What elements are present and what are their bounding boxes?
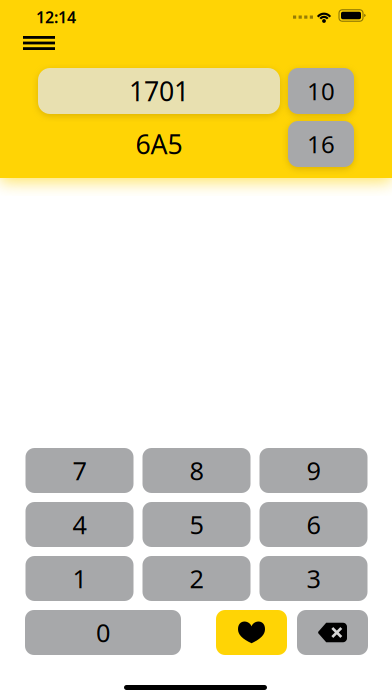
button[interactable]: 4: [25, 502, 133, 547]
button[interactable]: 3: [259, 556, 367, 601]
staticText: 2: [189, 562, 203, 595]
staticText: 8: [189, 454, 203, 487]
staticText: 1701: [129, 73, 189, 109]
button[interactable]: 2: [142, 556, 250, 601]
staticText: 6: [306, 508, 320, 541]
staticText: 10: [307, 75, 335, 107]
staticText: 6A5: [135, 126, 182, 162]
button[interactable]: 16: [288, 121, 354, 167]
button[interactable]: 1: [25, 556, 133, 601]
button[interactable]: Favourite: [216, 610, 287, 655]
button[interactable]: 6A5: [38, 121, 280, 167]
button[interactable]: 5: [142, 502, 250, 547]
button[interactable]: 6: [259, 502, 367, 547]
staticText: 0: [96, 616, 110, 649]
button[interactable]: 7: [25, 448, 133, 493]
staticText: 12:14: [36, 6, 76, 28]
staticText: 1: [72, 562, 86, 595]
staticText: 4: [72, 508, 86, 541]
staticText: 7: [72, 454, 86, 487]
button[interactable]: 1701: [38, 68, 280, 114]
button[interactable]: 8: [142, 448, 250, 493]
button[interactable]: 9: [259, 448, 367, 493]
staticText: 3: [306, 562, 320, 595]
staticText: 16: [307, 128, 335, 160]
button[interactable]: 0: [25, 610, 181, 655]
staticText: 5: [189, 508, 203, 541]
button[interactable]: Menu: [17, 30, 61, 56]
button[interactable]: 10: [288, 68, 354, 114]
staticText: 9: [306, 454, 320, 487]
button[interactable]: Delete: [297, 610, 368, 655]
